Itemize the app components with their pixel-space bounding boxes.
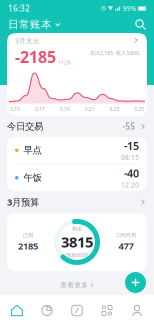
staticText: 16:32 xyxy=(8,3,30,14)
button[interactable]: Search xyxy=(135,19,146,30)
staticText: 477 xyxy=(118,240,133,252)
button[interactable]: Categories xyxy=(92,296,122,324)
button[interactable]: Statistics xyxy=(32,296,62,324)
button[interactable]: Profile xyxy=(122,296,152,324)
staticText: 3月支出 xyxy=(15,36,40,45)
staticText: 今日交易 xyxy=(7,121,43,132)
staticText: 99% xyxy=(122,4,136,13)
staticText: 剩余 xyxy=(72,225,82,232)
staticText: -15 xyxy=(124,139,139,153)
staticText: +12% xyxy=(58,59,71,66)
button[interactable]: 早点 xyxy=(7,137,147,164)
staticText: 3.17 xyxy=(35,105,45,113)
staticText: 3.25 xyxy=(134,105,144,113)
button[interactable]: Add transaction xyxy=(125,272,146,293)
staticText: 3月预算 xyxy=(7,196,39,208)
button[interactable]: Home xyxy=(2,296,32,324)
button[interactable]: Open 3月预算 xyxy=(138,197,147,207)
staticText: 支出2,185 · 收入3,800 xyxy=(90,49,139,56)
staticText: 12:20 xyxy=(121,180,139,189)
button[interactable]: 查看更多 xyxy=(50,277,104,293)
staticText: -40 xyxy=(124,166,139,180)
staticText: 已用 xyxy=(23,232,33,239)
staticText: 08:15 xyxy=(121,153,139,162)
button[interactable]: 午饭 xyxy=(7,164,147,191)
staticText: 预算6000 xyxy=(66,251,88,259)
staticText: 日常账本 xyxy=(8,18,52,31)
button[interactable]: Details xyxy=(133,36,139,44)
staticText: -2185 xyxy=(15,46,56,67)
button[interactable]: 日常账本 xyxy=(8,16,60,33)
staticText: 2185 xyxy=(18,240,38,252)
button[interactable]: Open 今日交易 xyxy=(138,121,147,131)
button[interactable]: Records xyxy=(62,296,92,324)
staticText: 3.15 xyxy=(10,105,20,113)
staticText: 午饭 xyxy=(23,172,41,183)
staticText: 3.23 xyxy=(109,105,119,113)
staticText: 3815 xyxy=(61,232,93,251)
staticText: 3.19 xyxy=(60,105,70,113)
staticText: 3.21 xyxy=(84,105,94,113)
staticText: 查看更多 xyxy=(60,281,88,289)
staticText: 早点 xyxy=(23,144,41,156)
staticText: -55 xyxy=(122,121,135,132)
staticText: 日均可用 xyxy=(116,232,136,239)
